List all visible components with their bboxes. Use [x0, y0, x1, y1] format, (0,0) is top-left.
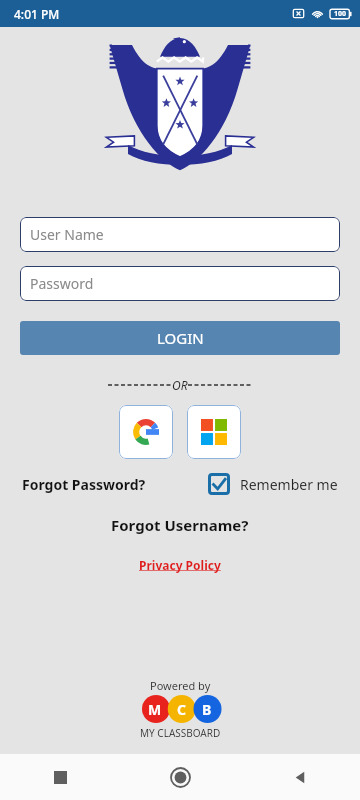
staticText: OR [172, 377, 188, 393]
button[interactable]: Password [20, 266, 340, 301]
staticText: M [148, 700, 162, 719]
other: Remember me [208, 473, 230, 495]
button[interactable]: User Name [20, 217, 340, 252]
staticText: MY CLASSBOARD [140, 726, 221, 740]
staticText: Forgot Username? [111, 515, 249, 535]
button[interactable]: Forgot Password? [22, 475, 146, 494]
button[interactable]: Sign in with Microsoft [187, 405, 241, 459]
button[interactable]: LOGIN [20, 321, 340, 355]
staticText: 100 [334, 9, 347, 19]
staticText: User Name [30, 225, 104, 244]
button[interactable]: Recent apps [0, 754, 120, 800]
staticText: B [202, 700, 212, 719]
staticText: Forgot Password? [22, 475, 146, 494]
staticText: Privacy Policy [139, 557, 221, 573]
staticText: Password [30, 274, 94, 293]
button[interactable]: Forgot Username? [0, 515, 360, 535]
staticText: C [177, 700, 186, 719]
staticText: 4:01 PM [14, 6, 60, 22]
button[interactable]: Home [120, 754, 240, 800]
button[interactable]: Sign in with Google [119, 405, 173, 459]
staticText: Powered by [150, 678, 211, 693]
button[interactable]: Remember me [208, 473, 338, 495]
button[interactable]: Privacy Policy [0, 557, 360, 573]
staticText: LOGIN [157, 328, 204, 348]
button[interactable]: Back [240, 754, 360, 800]
other: School crest [100, 33, 260, 173]
staticText: Remember me [240, 475, 338, 494]
